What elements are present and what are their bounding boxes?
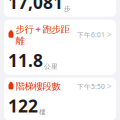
- staticText: 步行 + 跑步距離: [15, 23, 69, 47]
- button[interactable]: 階梯樓段數: [4, 78, 116, 120]
- staticText: 下午6:01: [77, 30, 105, 39]
- staticText: 11.8: [8, 49, 43, 72]
- staticText: 階梯樓段數: [15, 81, 60, 92]
- staticText: 122: [8, 94, 38, 117]
- staticText: >: [107, 81, 112, 92]
- staticText: 步: [64, 5, 71, 13]
- staticText: 17,081: [8, 0, 63, 14]
- button[interactable]: 步行 + 跑步距離: [4, 20, 116, 75]
- staticText: 下午5:50: [77, 82, 105, 91]
- staticText: 公里: [44, 62, 58, 71]
- staticText: 樓: [39, 108, 46, 116]
- button[interactable]: 步行: [4, 0, 116, 17]
- staticText: >: [107, 29, 112, 40]
